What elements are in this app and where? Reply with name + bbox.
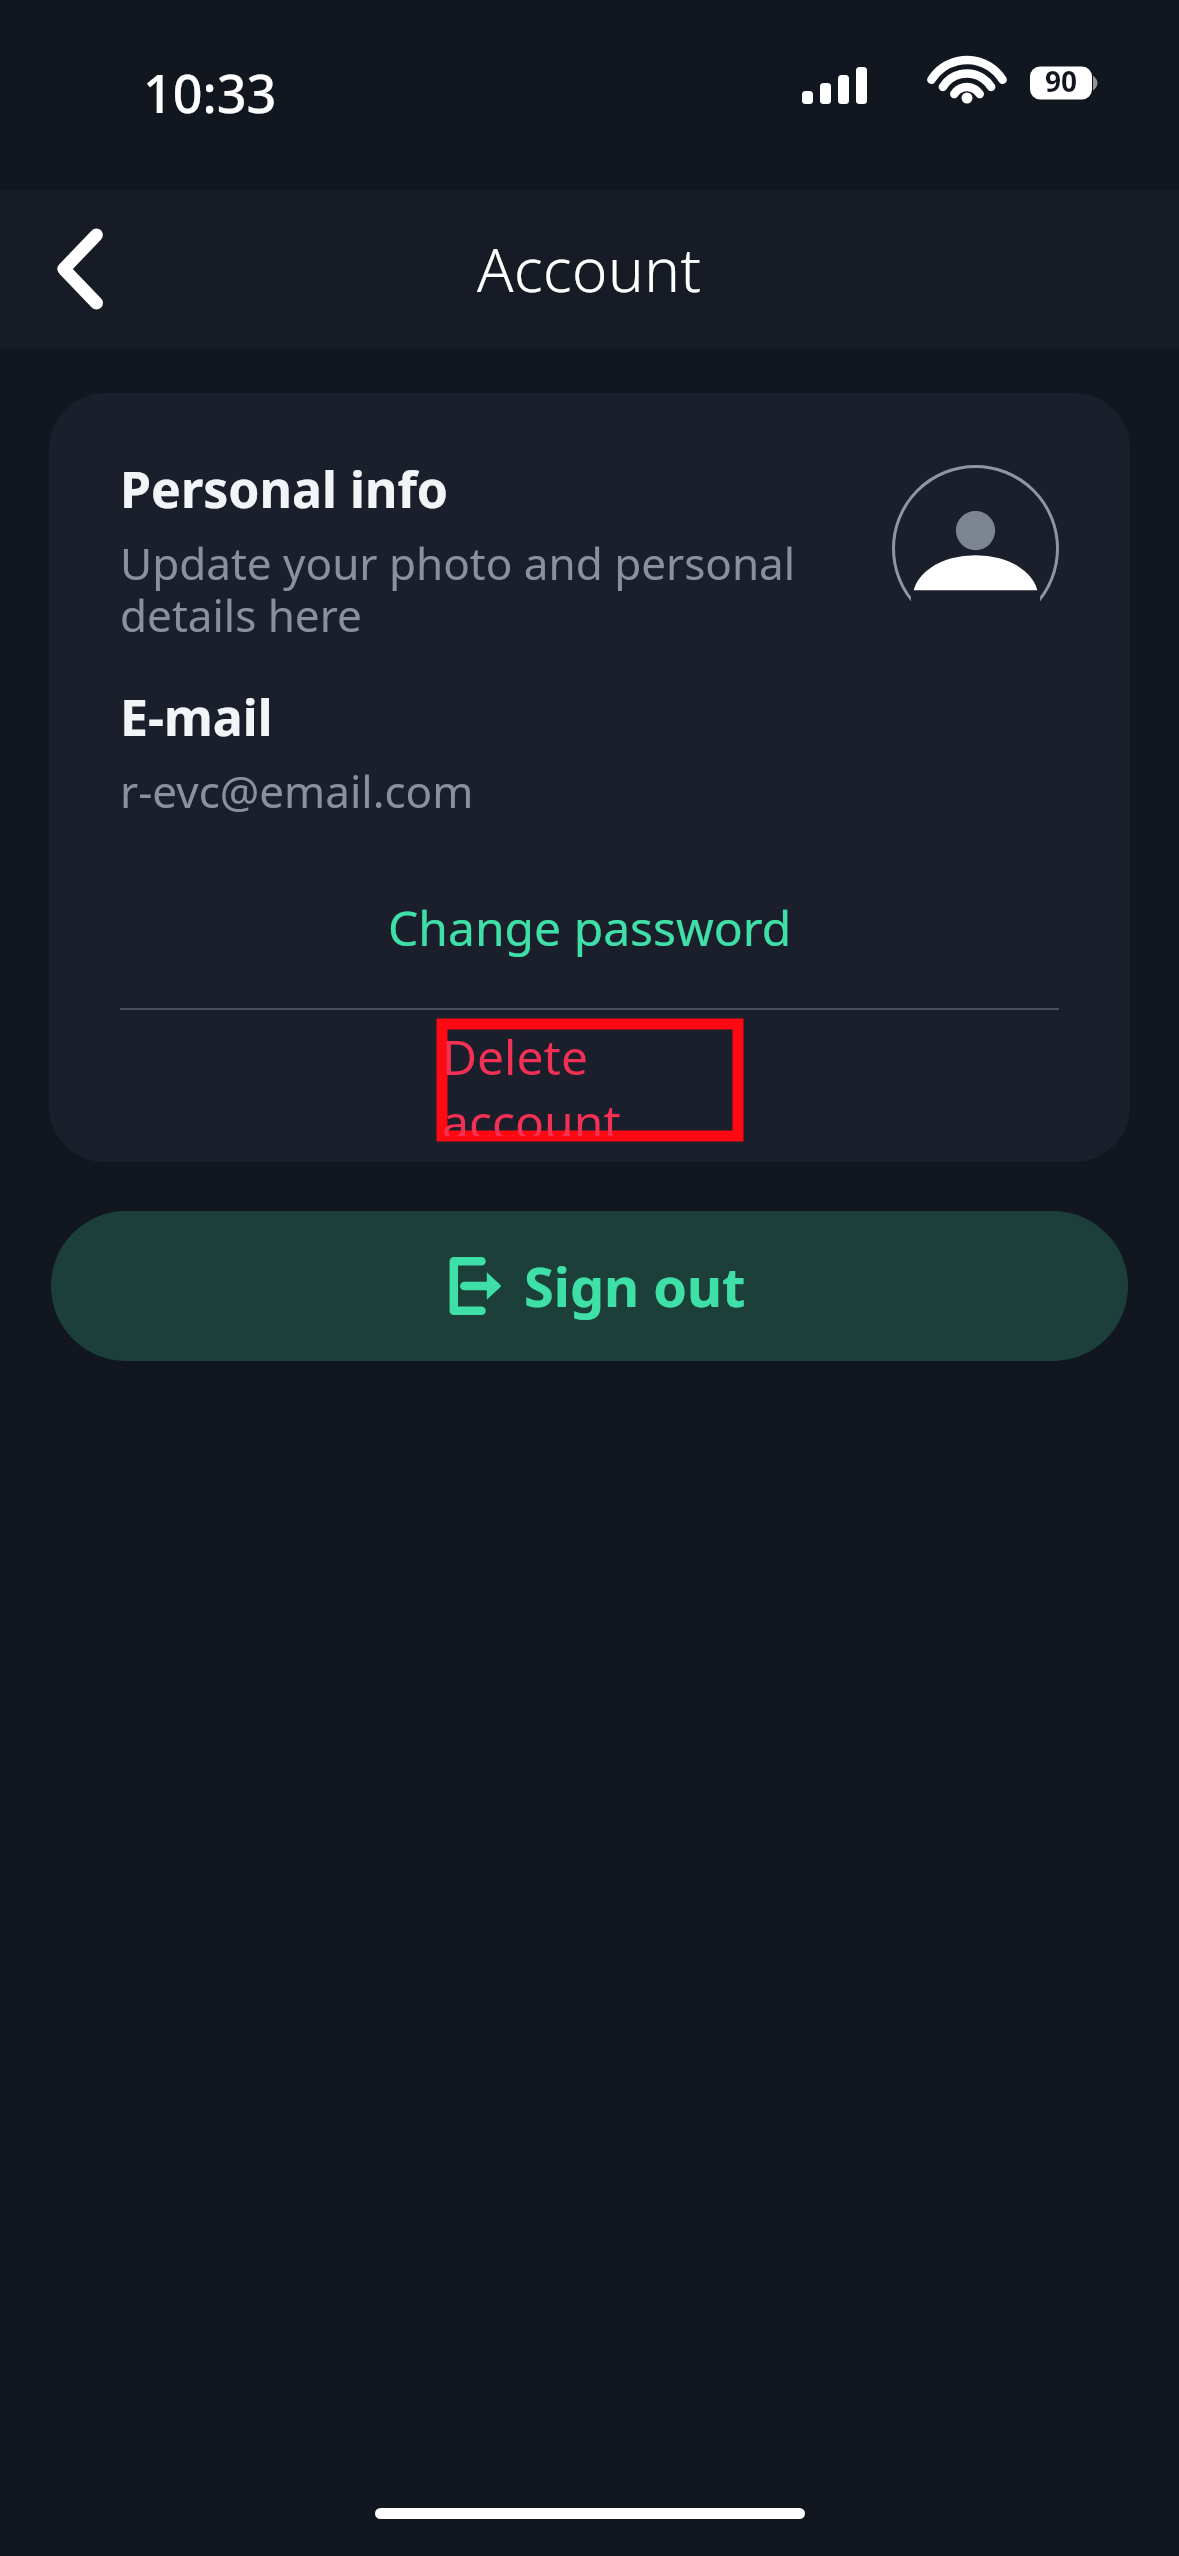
staticText: Delete account bbox=[442, 1024, 738, 1136]
staticText: 90 bbox=[1030, 62, 1092, 100]
staticText: Sign out bbox=[524, 1249, 746, 1323]
button[interactable]: Personal info bbox=[49, 393, 1130, 655]
staticText: Update your photo and personal details h… bbox=[120, 533, 796, 645]
button[interactable]: Change password bbox=[49, 885, 1130, 970]
staticText: r-evc@email.com bbox=[120, 761, 474, 821]
staticText: E-mail bbox=[120, 683, 273, 751]
button[interactable]: Sign out bbox=[51, 1211, 1128, 1361]
button[interactable]: Delete account bbox=[442, 1024, 738, 1136]
staticText: 10:33 bbox=[143, 57, 277, 128]
staticText: Change password bbox=[388, 895, 792, 960]
staticText: Account bbox=[477, 228, 702, 310]
staticText: Personal info bbox=[120, 455, 448, 523]
button[interactable]: Back bbox=[34, 220, 132, 318]
button[interactable]: E-mail bbox=[49, 679, 1130, 825]
